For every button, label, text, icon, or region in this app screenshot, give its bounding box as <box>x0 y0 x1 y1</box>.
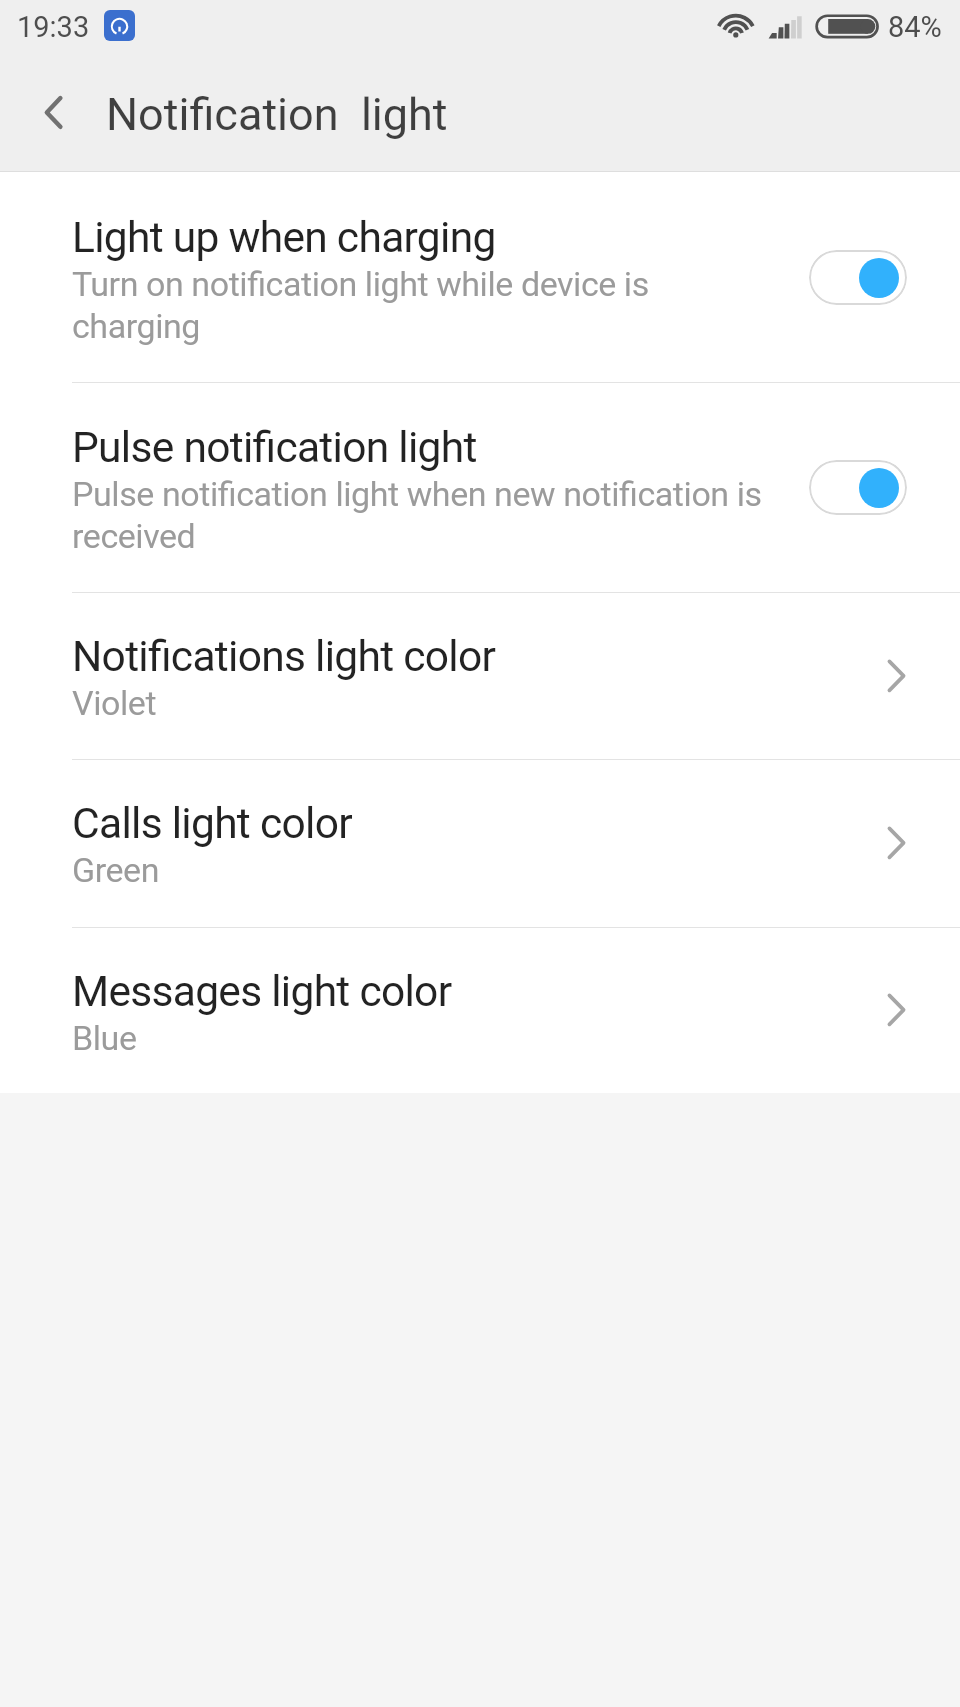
staticText: Blue <box>72 1017 137 1059</box>
staticText: Calls light color <box>72 800 352 848</box>
button[interactable]: Calls light color <box>0 759 960 927</box>
staticText: Notification light <box>106 88 448 141</box>
button[interactable]: Messages light color <box>0 927 960 1093</box>
staticText: 84% <box>888 10 942 44</box>
staticText: Violet <box>72 682 157 724</box>
button[interactable]: Light up when charging <box>0 172 960 382</box>
staticText: Pulse notification light <box>72 424 477 472</box>
button[interactable]: Open Calls light color <box>876 822 918 864</box>
staticText: Turn on notification light while device … <box>72 263 770 347</box>
staticText: Light up when charging <box>72 214 496 262</box>
button[interactable]: Pulse notification light <box>0 382 960 592</box>
button[interactable]: Open Notifications light color <box>876 655 918 697</box>
button[interactable]: Toggle <box>809 460 907 515</box>
staticText: Messages light color <box>72 968 452 1016</box>
button[interactable]: Notifications light color <box>0 592 960 759</box>
staticText: Notifications light color <box>72 633 496 681</box>
button[interactable]: Back <box>0 56 96 172</box>
staticText: Pulse notification light when new notifi… <box>72 473 770 557</box>
staticText: 19:33 <box>17 10 90 44</box>
staticText: Green <box>72 849 160 891</box>
button[interactable]: Toggle <box>809 250 907 305</box>
button[interactable]: Open Messages light color <box>876 989 918 1031</box>
